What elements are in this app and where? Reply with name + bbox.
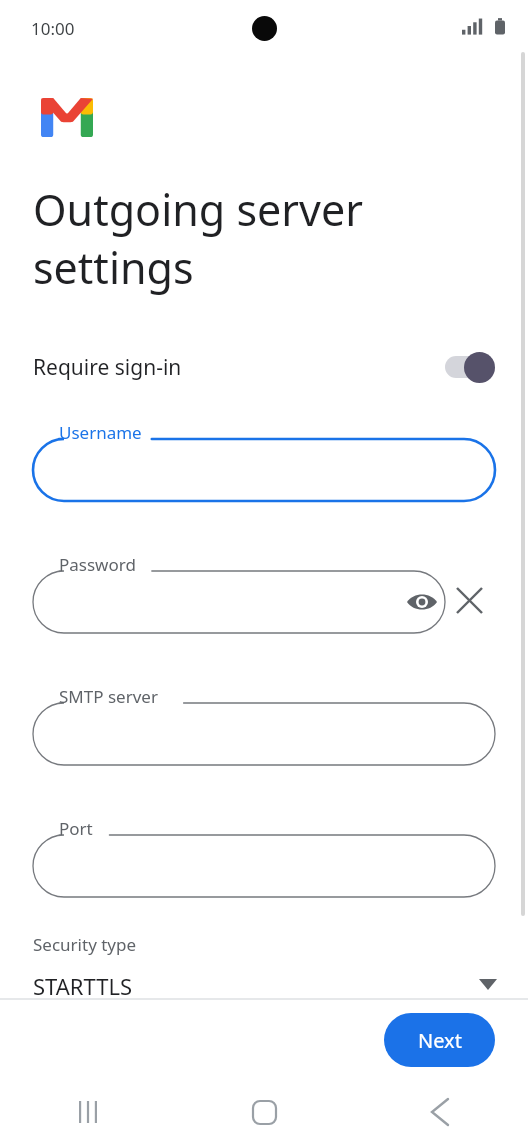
- button[interactable]: Clear password: [445, 576, 493, 624]
- button[interactable]: Home: [176, 1080, 352, 1144]
- staticText: Username: [59, 421, 142, 444]
- button[interactable]: Next: [384, 1013, 495, 1067]
- staticText: Require sign-in: [33, 353, 182, 382]
- button[interactable]: SMTP server: [33, 681, 495, 765]
- staticText: Outgoing server settings: [33, 180, 363, 296]
- staticText: Password: [59, 553, 136, 576]
- staticText: 10:00: [31, 17, 75, 40]
- button[interactable]: Require sign-in toggle: [443, 350, 497, 384]
- button[interactable]: Require sign-in: [0, 343, 528, 391]
- staticText: Port: [59, 817, 93, 840]
- button[interactable]: Security type: [0, 933, 528, 998]
- staticText: STARTTLS: [33, 971, 133, 998]
- staticText: SMTP server: [59, 685, 158, 708]
- staticText: Next: [418, 1027, 462, 1054]
- button[interactable]: Recents: [0, 1080, 176, 1144]
- button[interactable]: Username: [33, 417, 495, 501]
- button[interactable]: Back: [352, 1080, 528, 1144]
- button[interactable]: Password: [33, 549, 445, 633]
- button[interactable]: Port: [33, 813, 495, 897]
- staticText: Security type: [33, 933, 137, 956]
- button[interactable]: Show password: [399, 579, 445, 625]
